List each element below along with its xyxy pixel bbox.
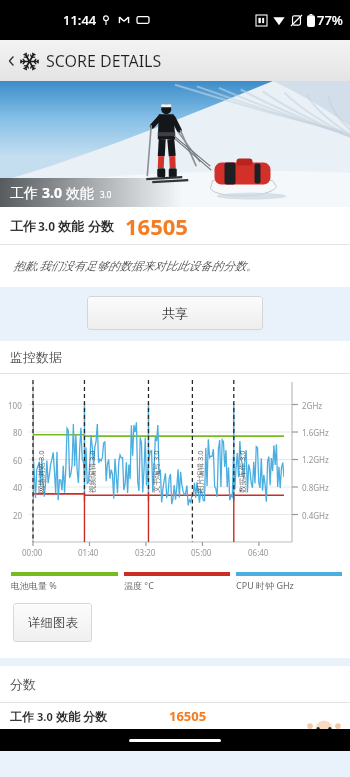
staticText: 效能 xyxy=(62,183,94,202)
staticText: 40 xyxy=(13,482,23,493)
staticText: 1.6GHz xyxy=(302,427,329,438)
staticText: 电池电量 % xyxy=(11,579,57,591)
staticText: 0.4GHz xyxy=(302,510,329,521)
staticText: 05:00 xyxy=(191,547,212,558)
staticText: 3.0 xyxy=(42,183,62,202)
staticText: 80 xyxy=(13,427,23,438)
staticText: 77% xyxy=(317,11,343,29)
staticText: 1.2GHz xyxy=(302,454,329,465)
staticText: 文书编写 3.0 xyxy=(151,450,161,493)
staticText: 效能 xyxy=(58,218,84,234)
staticText: 详细图表 xyxy=(28,615,78,631)
staticText: 16505 xyxy=(169,707,207,725)
staticText: 3.0 xyxy=(37,709,53,724)
staticText: 60 xyxy=(13,455,23,466)
staticText: 2GHz xyxy=(302,400,323,411)
staticText: 工作 xyxy=(10,183,42,202)
staticText: 网络浏览 3.0 xyxy=(36,450,46,493)
staticText: 工作 xyxy=(10,709,34,724)
staticText: 图片编辑 3.0 xyxy=(195,450,205,493)
staticText: 抱歉,我们没有足够的数据来对比此设备的分数。 xyxy=(13,258,258,274)
staticText: 共享 xyxy=(162,305,188,321)
staticText: 20 xyxy=(13,510,23,521)
staticText: 工作 xyxy=(10,218,36,234)
staticText: 16505 xyxy=(125,211,188,241)
staticText: 监控数据 xyxy=(10,349,62,365)
staticText: 分数 xyxy=(10,676,36,692)
staticText: SCORE DETAILS xyxy=(46,50,162,72)
staticText: 00:00 xyxy=(22,547,43,558)
button[interactable]: 共享 xyxy=(87,296,263,330)
staticText: 3.0 xyxy=(100,189,112,200)
button[interactable]: 详细图表 xyxy=(13,603,92,642)
staticText: CPU 时钟 GHz xyxy=(236,579,294,591)
staticText: 03:20 xyxy=(135,547,156,558)
staticText: 11:44 xyxy=(63,11,97,29)
staticText: 06:40 xyxy=(248,547,269,558)
button[interactable]: Back xyxy=(4,53,20,69)
staticText: 3.0 xyxy=(38,218,56,234)
staticText: 分数 xyxy=(83,709,107,724)
staticText: 0.8GHz xyxy=(302,482,329,493)
staticText: 温度 °C xyxy=(124,579,154,591)
staticText: 效能 xyxy=(56,709,80,724)
staticText: 01:40 xyxy=(78,547,99,558)
staticText: 数据库作 3.0 xyxy=(237,450,247,493)
staticText: 100 xyxy=(8,400,22,411)
staticText: 分数 xyxy=(88,218,114,234)
staticText: 视频编辑 3.0 xyxy=(87,450,97,493)
